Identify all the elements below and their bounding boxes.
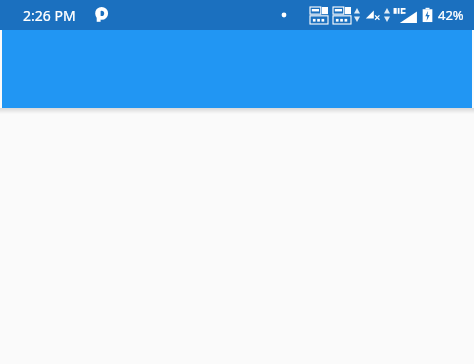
other: VoLTE SIM 1 xyxy=(310,7,328,24)
staticText: 2:26 PM xyxy=(23,6,76,25)
button[interactable] xyxy=(0,30,474,108)
staticText: 42% xyxy=(438,6,464,24)
other: Data transfer xyxy=(354,7,360,23)
other: Pandora notification xyxy=(94,8,109,23)
other: 4G signal xyxy=(392,7,418,24)
other: Battery 42 percent xyxy=(422,7,433,23)
other: VoLTE SIM 2 xyxy=(333,7,351,24)
other: Data transfer xyxy=(384,7,390,23)
other: No signal xyxy=(365,7,382,23)
